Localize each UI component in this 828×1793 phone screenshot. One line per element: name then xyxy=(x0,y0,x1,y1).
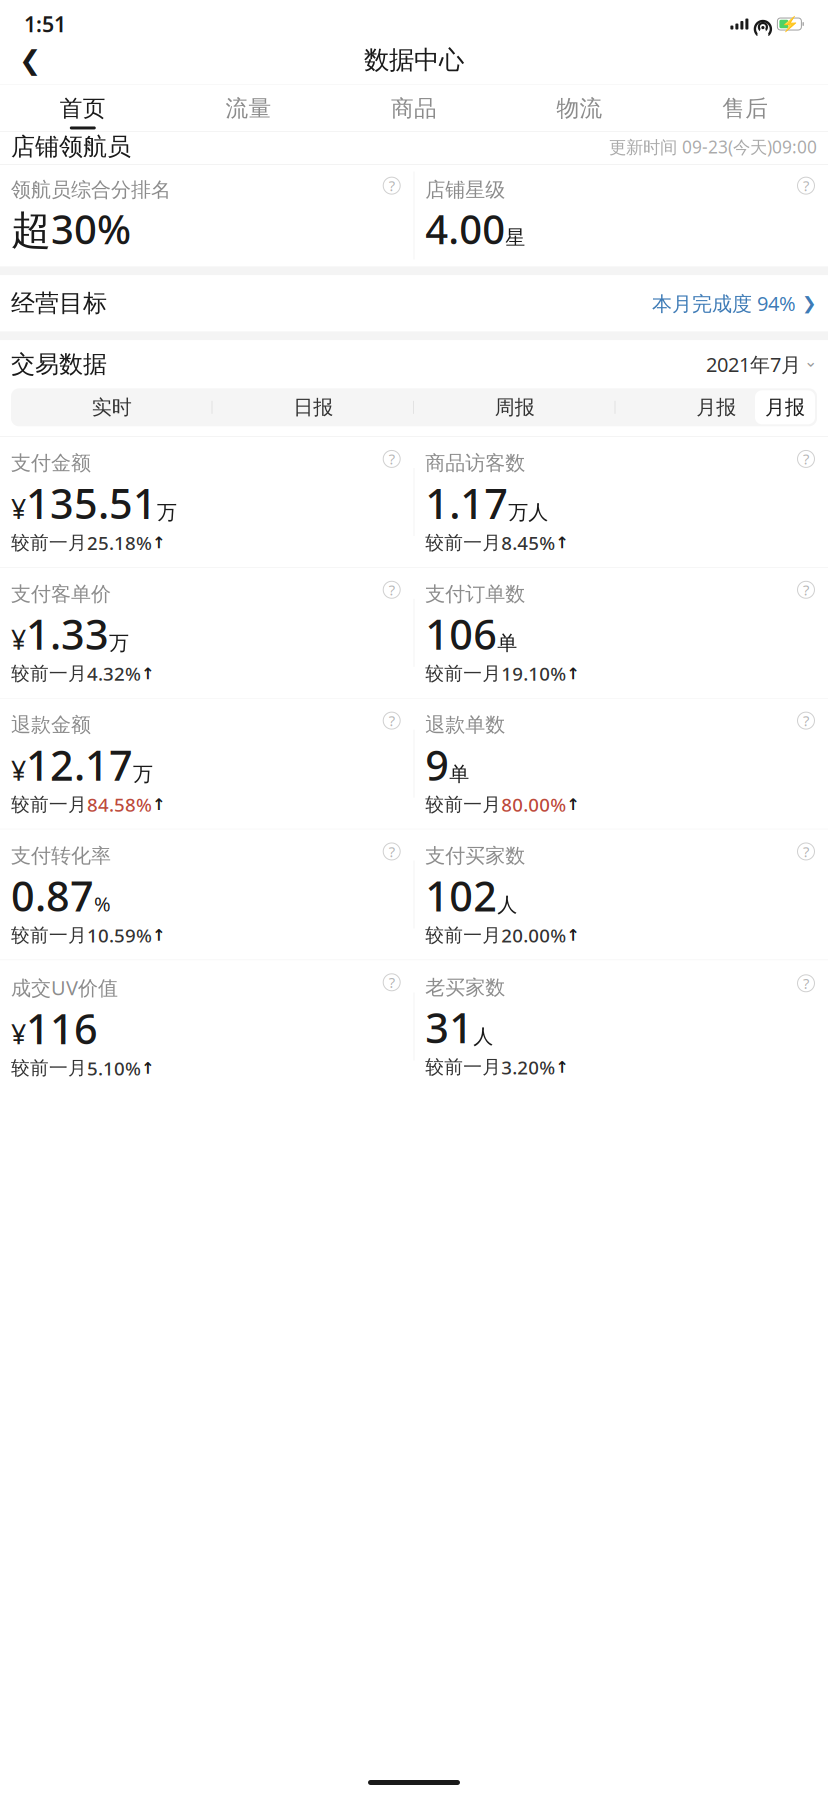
staticText: 退款金额 xyxy=(11,713,91,737)
button[interactable]: 说明 xyxy=(381,840,403,862)
staticText: 售后 xyxy=(722,95,768,122)
button[interactable]: 支付订单数 xyxy=(414,568,828,698)
staticText: ↑ xyxy=(141,1059,154,1077)
staticText: 本月完成度 94% xyxy=(652,290,796,317)
button[interactable]: 返回 xyxy=(8,38,52,82)
staticText: ↑ xyxy=(152,795,165,814)
staticText: ↑ xyxy=(152,926,165,944)
staticText: 19.10% xyxy=(501,661,566,686)
button[interactable]: 说明 xyxy=(795,175,817,197)
staticText: 支付客单价 xyxy=(11,582,111,606)
staticText: 4.32% xyxy=(87,661,141,686)
staticText: 4.00 xyxy=(425,202,505,255)
staticText: 人 xyxy=(497,893,517,917)
staticText: 周报 xyxy=(495,395,535,420)
staticText: 万 xyxy=(109,631,129,655)
staticText: ¥ xyxy=(11,753,26,788)
button[interactable]: 说明 xyxy=(795,448,817,470)
staticText: 0.87 xyxy=(11,868,94,923)
button[interactable]: 2021年7月 xyxy=(706,351,817,378)
staticText: 人 xyxy=(473,1024,493,1049)
staticText: ? xyxy=(803,711,809,730)
staticText: 12.17 xyxy=(26,737,133,792)
staticText: 超30% xyxy=(11,202,131,255)
staticText: 商品访客数 xyxy=(425,451,525,475)
staticText: ¥ xyxy=(11,622,26,657)
button[interactable]: 老买家数 xyxy=(414,961,828,1091)
staticText: ↑ xyxy=(555,534,568,552)
staticText: 退款单数 xyxy=(425,713,505,737)
staticText: 老买家数 xyxy=(425,975,505,1000)
staticText: 2021年7月 xyxy=(706,351,801,378)
staticText: 日报 xyxy=(293,395,333,420)
staticText: 较前一月 xyxy=(11,662,87,685)
staticText: ↑ xyxy=(566,926,579,944)
staticText: 20.00% xyxy=(501,923,566,948)
staticText: 1:51 xyxy=(24,10,66,38)
staticText: 交易数据 xyxy=(11,350,107,379)
staticText: 102 xyxy=(425,868,497,923)
staticText: 支付转化率 xyxy=(11,843,111,868)
staticText: ? xyxy=(803,176,809,195)
staticText: 单 xyxy=(497,631,517,655)
staticText: 31 xyxy=(425,1000,473,1055)
staticText: 万人 xyxy=(508,500,548,525)
staticText: 支付金额 xyxy=(11,451,91,475)
staticText: ? xyxy=(389,973,395,992)
button[interactable]: 店铺星级 xyxy=(414,165,828,266)
button[interactable]: 领航员综合分排名 xyxy=(0,165,414,266)
button[interactable]: 首页 xyxy=(0,85,166,131)
staticText: 月报 xyxy=(765,395,805,420)
staticText: 5.10% xyxy=(87,1056,141,1080)
staticText: 单 xyxy=(449,762,469,786)
staticText: % xyxy=(94,890,111,917)
staticText: 经营目标 xyxy=(11,289,107,318)
button[interactable]: 说明 xyxy=(381,448,403,470)
staticText: 月报 xyxy=(696,395,736,420)
button[interactable]: 说明 xyxy=(795,840,817,862)
staticText: 物流 xyxy=(557,95,603,122)
staticText: ¥ xyxy=(11,491,26,526)
button[interactable]: 商品访客数 xyxy=(414,437,828,567)
button[interactable]: 经营目标 xyxy=(0,275,828,331)
button[interactable]: 说明 xyxy=(381,579,403,601)
button[interactable]: 说明 xyxy=(381,710,403,732)
staticText: 1.17 xyxy=(425,475,508,530)
button[interactable]: 退款单数 xyxy=(414,699,828,829)
staticText: 1.33 xyxy=(26,606,109,661)
button[interactable]: 说明 xyxy=(381,175,403,197)
button[interactable]: 退款金额 xyxy=(0,699,414,829)
button[interactable]: 物流 xyxy=(497,85,662,131)
staticText: 10.59% xyxy=(87,923,152,948)
staticText: 较前一月 xyxy=(425,662,501,685)
staticText: 116 xyxy=(26,1001,98,1056)
staticText: 领航员综合分排名 xyxy=(11,178,171,202)
staticText: ? xyxy=(803,974,809,993)
staticText: 较前一月 xyxy=(425,793,501,816)
staticText: ¥ xyxy=(11,1016,26,1052)
button[interactable]: 说明 xyxy=(795,972,817,994)
staticText: 较前一月 xyxy=(11,531,87,554)
button[interactable]: 商品 xyxy=(331,85,497,131)
button[interactable]: 支付转化率 xyxy=(0,829,414,960)
staticText: 较前一月 xyxy=(425,1056,501,1079)
button[interactable]: 支付客单价 xyxy=(0,568,414,698)
staticText: ↑ xyxy=(152,534,165,552)
staticText: 84.58% xyxy=(87,792,152,817)
staticText: 25.18% xyxy=(87,530,152,555)
staticText: 较前一月 xyxy=(11,924,87,947)
button[interactable]: 说明 xyxy=(795,710,817,732)
button[interactable]: 流量 xyxy=(166,85,331,131)
button[interactable]: 支付金额 xyxy=(0,437,414,567)
staticText: ❮ xyxy=(19,45,41,75)
staticText: 较前一月 xyxy=(11,793,87,816)
staticText: ⌄ xyxy=(804,352,817,370)
button[interactable]: 说明 xyxy=(795,579,817,601)
staticText: 流量 xyxy=(225,95,271,122)
button[interactable]: 月报 xyxy=(755,390,815,424)
button[interactable]: 售后 xyxy=(662,85,828,131)
button[interactable]: 说明 xyxy=(381,971,403,993)
staticText: 万 xyxy=(157,500,177,525)
button[interactable]: 成交UV价值 xyxy=(0,960,414,1092)
button[interactable]: 支付买家数 xyxy=(414,829,828,960)
